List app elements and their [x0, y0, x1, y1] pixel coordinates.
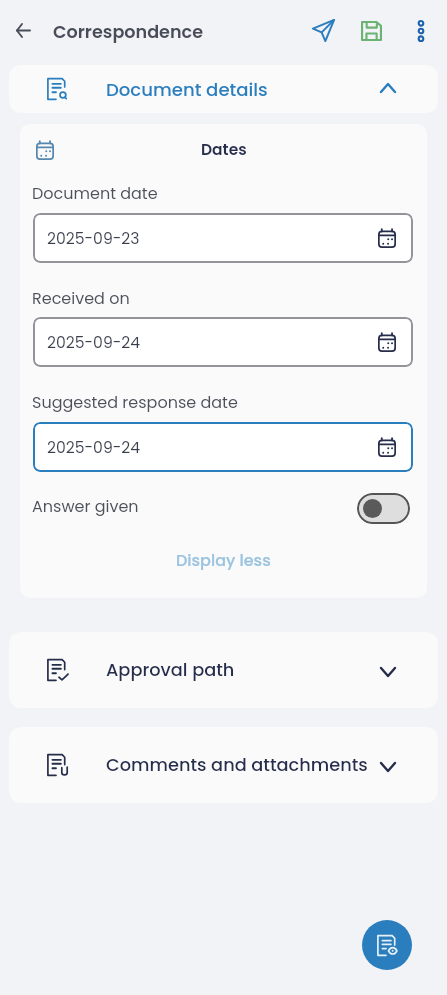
staticText: Dates — [201, 139, 247, 161]
staticText: Approval path — [106, 657, 235, 682]
button[interactable]: Display less — [20, 542, 427, 578]
staticText: Document date — [32, 182, 158, 204]
button[interactable]: Save — [349, 8, 394, 53]
button[interactable]: Comments and attachments — [9, 727, 438, 803]
staticText: Answer given — [32, 495, 139, 517]
button[interactable]: Document details — [9, 65, 438, 113]
staticText: Display less — [176, 549, 271, 571]
staticText: Document details — [106, 77, 268, 102]
button[interactable]: 2025-09-23 — [33, 213, 413, 263]
staticText: Suggested response date — [32, 391, 238, 413]
staticText: Received on — [32, 287, 130, 309]
button[interactable]: 2025-09-24 — [33, 422, 413, 472]
staticText: 2025-09-23 — [47, 228, 140, 250]
staticText: Comments and attachments — [106, 752, 368, 777]
button[interactable]: Preview document — [362, 920, 412, 970]
button[interactable]: Answer given — [357, 493, 410, 524]
staticText: Correspondence — [53, 20, 204, 45]
staticText: 2025-09-24 — [47, 332, 141, 354]
button[interactable]: Send — [301, 8, 346, 53]
button[interactable]: Back — [0, 8, 45, 53]
button[interactable]: Approval path — [9, 632, 438, 708]
button[interactable]: 2025-09-24 — [33, 317, 413, 367]
staticText: 2025-09-24 — [47, 437, 141, 459]
button[interactable]: More options — [398, 8, 443, 53]
